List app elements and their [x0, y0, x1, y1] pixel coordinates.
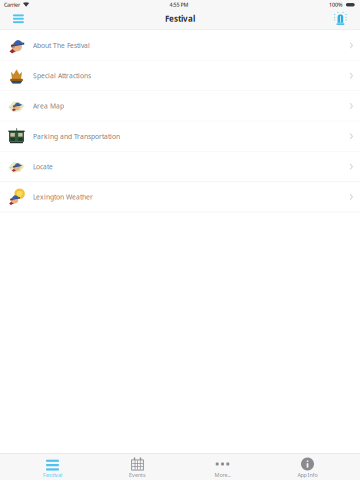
staticText: App Info: [297, 471, 317, 479]
button[interactable]: Alerts: [323, 9, 360, 29]
staticText: Lexington Weather: [33, 192, 93, 201]
button[interactable]: About The Festival: [0, 30, 360, 61]
staticText: More...: [214, 471, 230, 479]
button[interactable]: Festival: [10, 454, 95, 480]
staticText: Locate: [33, 162, 53, 171]
button[interactable]: Parking and Transportation: [0, 121, 360, 152]
button[interactable]: More...: [180, 454, 265, 480]
button[interactable]: Menu: [0, 9, 37, 30]
button[interactable]: Locate: [0, 152, 360, 182]
staticText: Special Attractions: [33, 71, 91, 80]
staticText: Events: [129, 471, 146, 479]
staticText: About The Festival: [33, 41, 90, 50]
button[interactable]: Lexington Weather: [0, 182, 360, 212]
button[interactable]: App Info: [265, 454, 350, 480]
staticText: Festival: [165, 13, 195, 24]
button[interactable]: Special Attractions: [0, 61, 360, 91]
staticText: Carrier: [4, 1, 20, 8]
staticText: Area Map: [33, 102, 64, 110]
button[interactable]: Events: [95, 454, 180, 480]
staticText: 100%: [329, 1, 343, 8]
staticText: Parking and Transportation: [33, 132, 120, 141]
staticText: Festival: [43, 471, 62, 479]
staticText: 4:55 PM: [169, 1, 188, 8]
button[interactable]: Area Map: [0, 91, 360, 121]
